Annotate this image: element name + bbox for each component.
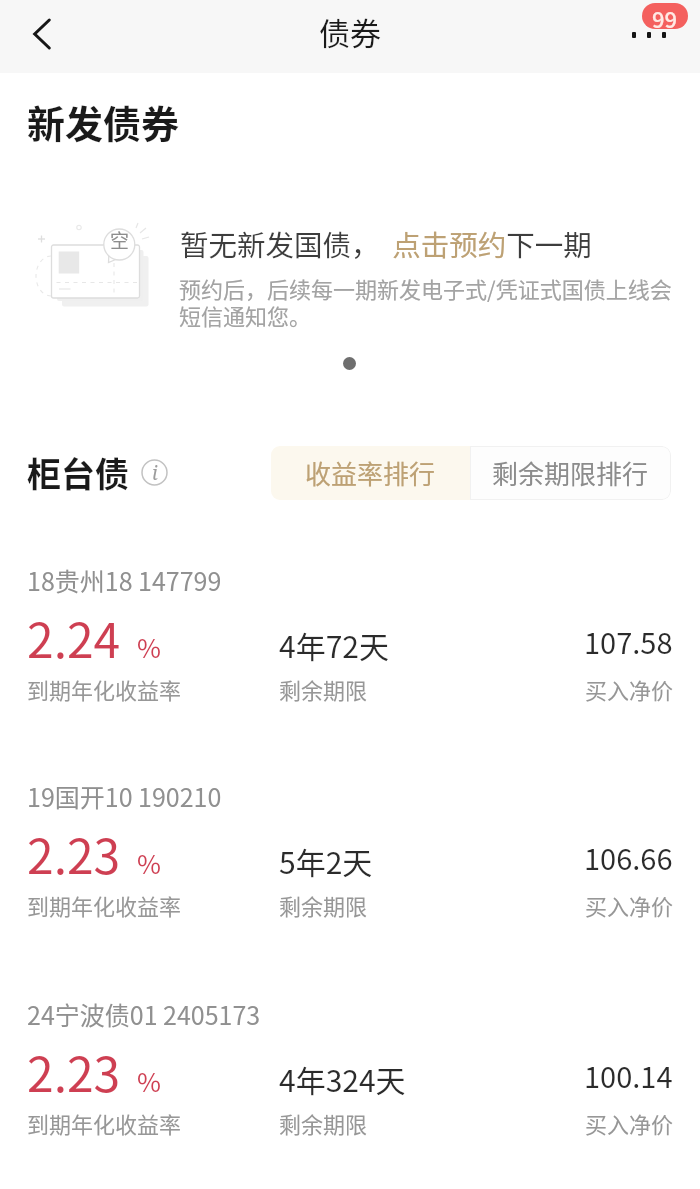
staticText: 2.23 bbox=[27, 1036, 121, 1106]
staticText: 100.14 bbox=[584, 1054, 673, 1096]
staticText: 19国开10 190210 bbox=[27, 778, 222, 814]
staticText: 5年2天 bbox=[279, 839, 373, 882]
staticText: 买入净价 bbox=[585, 1107, 674, 1139]
button[interactable]: 19国开10 190210 bbox=[0, 783, 700, 933]
button[interactable]: 剩余期限排行 bbox=[470, 446, 671, 500]
staticText: 24宁波债01 2405173 bbox=[27, 996, 261, 1032]
staticText: 预约后，后续每一期新发电子式/凭证式国债上线会短信通知您。 bbox=[179, 272, 673, 331]
staticText: % bbox=[137, 844, 161, 882]
staticText: % bbox=[137, 628, 161, 666]
staticText: 柜台债 bbox=[27, 448, 129, 497]
staticText: 剩余期限 bbox=[279, 1107, 368, 1139]
staticText: 18贵州18 147799 bbox=[27, 562, 222, 598]
staticText: 107.58 bbox=[584, 620, 673, 662]
staticText: 债券 bbox=[319, 9, 381, 54]
staticText: 剩余期限 bbox=[279, 673, 368, 705]
staticText: 4年324天 bbox=[279, 1057, 406, 1100]
staticText: 到期年化收益率 bbox=[27, 673, 182, 705]
button[interactable]: 收益率排行 bbox=[271, 446, 470, 500]
staticText: 剩余期限排行 bbox=[492, 454, 649, 492]
staticText: % bbox=[137, 1062, 161, 1100]
staticText: 暂无新发国债， 点击预约下一期 bbox=[180, 223, 592, 264]
staticText: i bbox=[152, 460, 158, 486]
staticText: 4年72天 bbox=[279, 623, 389, 666]
staticText: 到期年化收益率 bbox=[27, 1107, 182, 1139]
staticText: 99 bbox=[652, 3, 678, 28]
staticText: 空 bbox=[110, 226, 130, 254]
staticText: 新发债券 bbox=[27, 94, 180, 149]
staticText: 106.66 bbox=[584, 836, 673, 878]
button[interactable]: 18贵州18 147799 bbox=[0, 567, 700, 717]
button[interactable]: Info bbox=[141, 459, 168, 486]
button[interactable]: 24宁波债01 2405173 bbox=[0, 1001, 700, 1151]
staticText: 买入净价 bbox=[585, 889, 674, 921]
staticText: 买入净价 bbox=[585, 673, 674, 705]
staticText: 2.23 bbox=[27, 818, 121, 888]
staticText: 2.24 bbox=[27, 602, 121, 672]
button[interactable]: Back bbox=[11, 3, 73, 65]
button[interactable]: More options bbox=[614, 7, 682, 65]
staticText: 到期年化收益率 bbox=[27, 889, 182, 921]
staticText: 剩余期限 bbox=[279, 889, 368, 921]
staticText: 收益率排行 bbox=[305, 454, 436, 492]
